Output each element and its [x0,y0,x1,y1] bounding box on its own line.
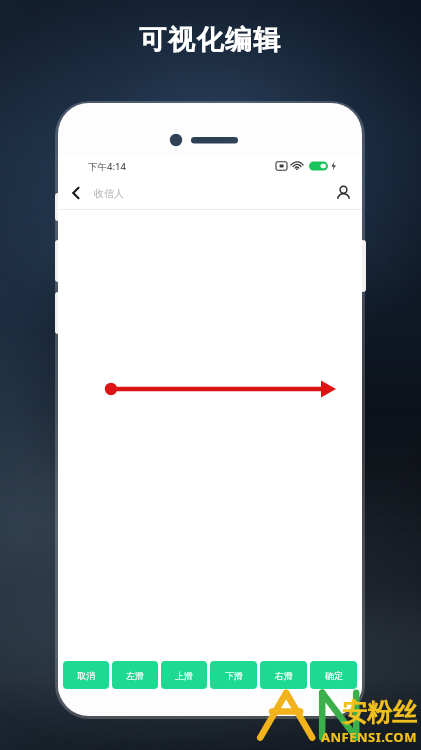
staticText: 上滑 [175,670,193,681]
staticText: 取消 [77,670,95,681]
button[interactable]: 上滑 [161,661,207,689]
staticText: 收信人 [94,187,124,200]
button[interactable]: 下滑 [210,661,257,689]
staticText: 可视化编辑 [139,23,282,57]
button[interactable]: 右滑 [260,661,307,689]
staticText: 下午4:14 [88,160,126,173]
button[interactable]: Back [58,177,94,209]
button[interactable]: 左滑 [112,661,158,689]
staticText: ANFENSI.COM [321,728,417,746]
staticText: 右滑 [275,670,293,681]
staticText: 安粉丝 [342,697,417,728]
staticText: 确定 [325,670,343,681]
button[interactable]: Contacts [324,177,362,209]
staticText: 左滑 [126,670,144,681]
button[interactable]: 取消 [63,661,109,689]
button[interactable]: 收信人 [94,177,324,209]
button[interactable]: 确定 [310,661,357,689]
staticText: 下滑 [225,670,243,681]
